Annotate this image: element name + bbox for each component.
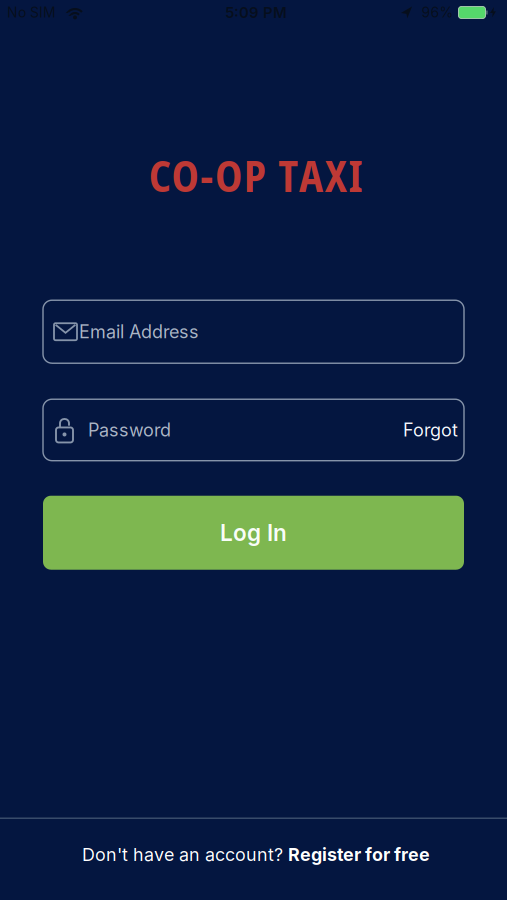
staticText: 96% xyxy=(421,4,453,21)
button[interactable]: Log In xyxy=(43,496,464,570)
button[interactable]: Don't have an account? Register for free xyxy=(79,844,427,865)
staticText: 5:09 PM xyxy=(225,3,287,22)
button[interactable]: Forgot xyxy=(403,419,458,441)
staticText: Log In xyxy=(220,519,287,546)
staticText: Password xyxy=(88,419,171,441)
staticText: Don't have an account? Register for free xyxy=(82,844,430,865)
staticText: CO-OP TAXI xyxy=(149,147,362,204)
staticText: Forgot xyxy=(403,419,458,441)
button[interactable]: Password xyxy=(43,399,464,461)
staticText: No SIM xyxy=(7,4,56,21)
button[interactable]: Email Address xyxy=(43,300,464,363)
staticText: Email Address xyxy=(79,321,199,343)
